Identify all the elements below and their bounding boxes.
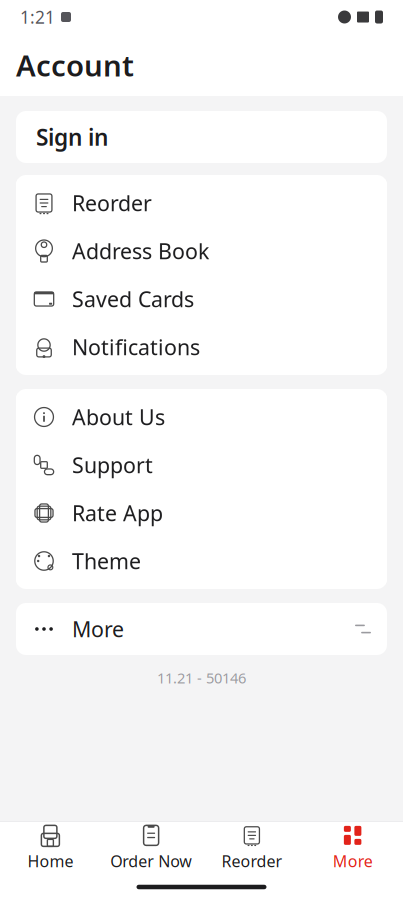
button[interactable]: More — [302, 822, 403, 874]
button[interactable]: Reorder — [16, 179, 387, 227]
staticText: Saved Cards — [72, 285, 194, 313]
staticText: Support — [72, 451, 153, 479]
staticText: About Us — [72, 403, 165, 431]
staticText: Reorder — [221, 850, 282, 872]
staticText: Home — [27, 850, 73, 872]
button[interactable]: Notifications — [16, 323, 387, 371]
staticText: More — [333, 850, 373, 872]
staticText: Order Now — [110, 850, 192, 872]
staticText: Reorder — [72, 189, 152, 217]
staticText: Notifications — [72, 333, 200, 361]
button[interactable]: Order Now — [101, 822, 202, 874]
button[interactable]: Theme — [16, 537, 387, 585]
button[interactable]: Saved Cards — [16, 275, 387, 323]
button[interactable]: About Us — [16, 393, 387, 441]
button[interactable]: More — [16, 603, 387, 655]
staticText: Account — [16, 45, 134, 84]
button[interactable]: Support — [16, 441, 387, 489]
staticText: 11.21 - 50146 — [157, 668, 246, 687]
staticText: 1:21 — [20, 5, 55, 28]
button[interactable]: Reorder — [201, 822, 302, 874]
staticText: Rate App — [72, 499, 163, 527]
button[interactable]: Home — [0, 822, 101, 874]
staticText: More — [72, 615, 124, 643]
staticText: Sign in — [36, 122, 108, 152]
button[interactable]: Rate App — [16, 489, 387, 537]
button[interactable]: Sign in — [16, 111, 387, 163]
button[interactable]: Address Book — [16, 227, 387, 275]
staticText: Theme — [72, 547, 141, 575]
staticText: Address Book — [72, 237, 209, 265]
